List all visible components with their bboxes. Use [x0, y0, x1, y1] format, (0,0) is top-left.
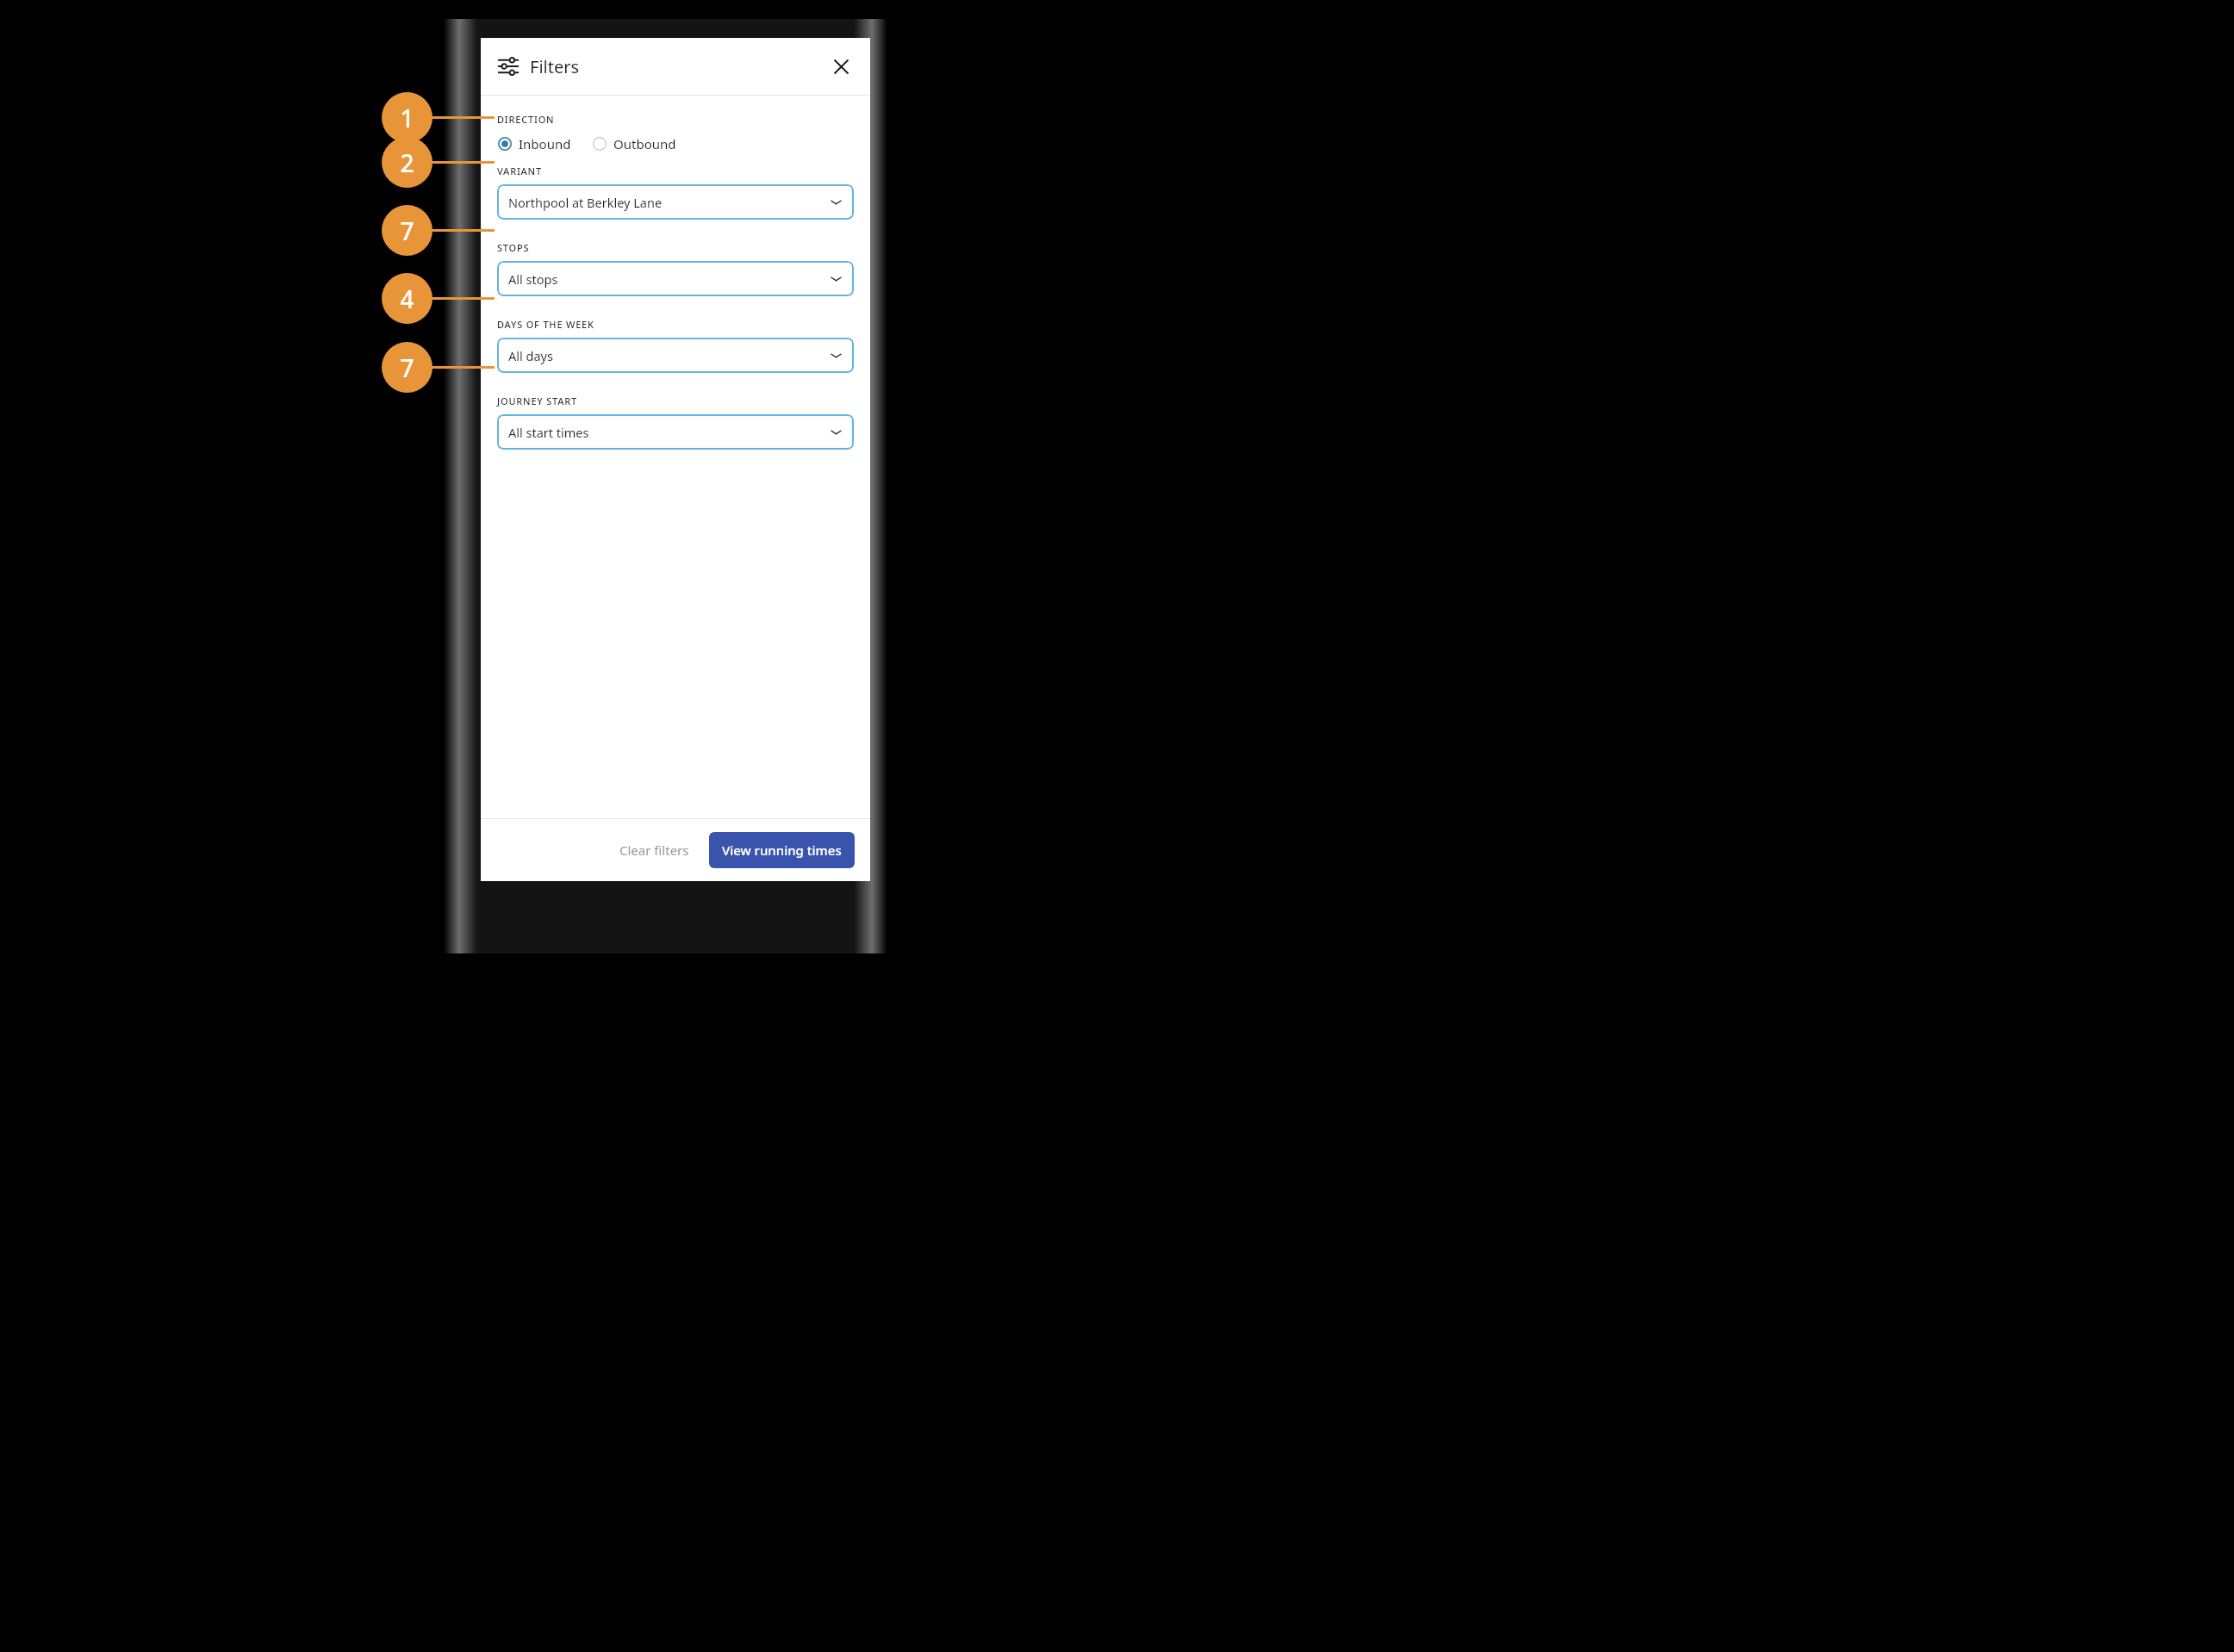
staticText: Outbound [613, 135, 676, 152]
button[interactable]: Inbound [497, 133, 572, 155]
staticText: VARIANT [497, 165, 542, 177]
button[interactable]: Close filters [825, 51, 856, 82]
staticText: 2 [400, 146, 414, 179]
button[interactable]: Outbound [592, 133, 677, 155]
button[interactable]: Clear filters [611, 835, 698, 866]
button[interactable]: All stops [497, 261, 854, 296]
staticText: 1 [400, 102, 414, 134]
staticText: DIRECTION [497, 113, 555, 126]
staticText: 7 [400, 351, 414, 384]
staticText: All stops [508, 270, 831, 288]
button[interactable]: Northpool at Berkley Lane [497, 184, 854, 220]
staticText: DAYS OF THE WEEK [497, 318, 594, 331]
staticText: 4 [400, 283, 414, 315]
staticText: JOURNEY START [497, 394, 578, 407]
staticText: View running times [722, 842, 842, 859]
staticText: Northpool at Berkley Lane [508, 194, 831, 211]
staticText: 7 [400, 214, 414, 247]
staticText: STOPS [497, 241, 530, 254]
staticText: Inbound [519, 135, 571, 152]
staticText: Clear filters [619, 842, 689, 859]
staticText: All days [508, 347, 831, 364]
button[interactable]: View running times [709, 832, 855, 868]
staticText: All start times [508, 424, 831, 441]
button[interactable]: All start times [497, 414, 854, 450]
staticText: Filters [530, 55, 580, 78]
button[interactable]: All days [497, 338, 854, 373]
